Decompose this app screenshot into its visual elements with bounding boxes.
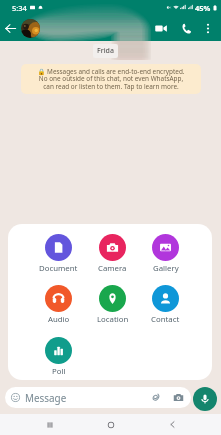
staticText: Camera: [98, 263, 127, 274]
staticText: Contact: [151, 314, 180, 325]
button[interactable]: Attach: [148, 390, 162, 404]
button[interactable]: Video call: [150, 15, 172, 41]
staticText: 5:34: [12, 3, 27, 13]
button[interactable]: Contact: [139, 285, 192, 325]
button[interactable]: Message: [5, 387, 191, 408]
staticText: Audio: [48, 314, 70, 325]
button[interactable]: Gallery: [139, 234, 192, 274]
button[interactable]: More options: [197, 15, 219, 41]
button[interactable]: Recent apps: [39, 414, 60, 435]
staticText: Frida: [97, 46, 114, 56]
staticText: 🔒 Messages and calls are end-to-end encr…: [26, 67, 196, 91]
button[interactable]: Back: [162, 414, 183, 435]
button[interactable]: Home: [100, 414, 121, 435]
staticText: Document: [39, 263, 78, 274]
button[interactable]: Camera: [86, 234, 139, 274]
staticText: 45%: [195, 3, 211, 13]
button[interactable]: Document: [32, 234, 85, 274]
staticText: Poll: [52, 366, 66, 377]
button[interactable]: Location: [86, 285, 139, 325]
button[interactable]: 🔒 Messages and calls are end-to-end encr…: [21, 64, 201, 94]
staticText: Message: [25, 391, 67, 404]
button[interactable]: Record voice message: [193, 387, 217, 411]
button[interactable]: Audio: [32, 285, 85, 325]
button[interactable]: Profile photo: [21, 19, 40, 38]
button[interactable]: Back: [0, 15, 21, 41]
button[interactable]: Camera: [171, 390, 185, 404]
button[interactable]: Voice call: [175, 15, 197, 41]
staticText: Gallery: [153, 263, 179, 274]
staticText: Location: [97, 314, 129, 325]
button[interactable]: Poll: [32, 337, 85, 377]
